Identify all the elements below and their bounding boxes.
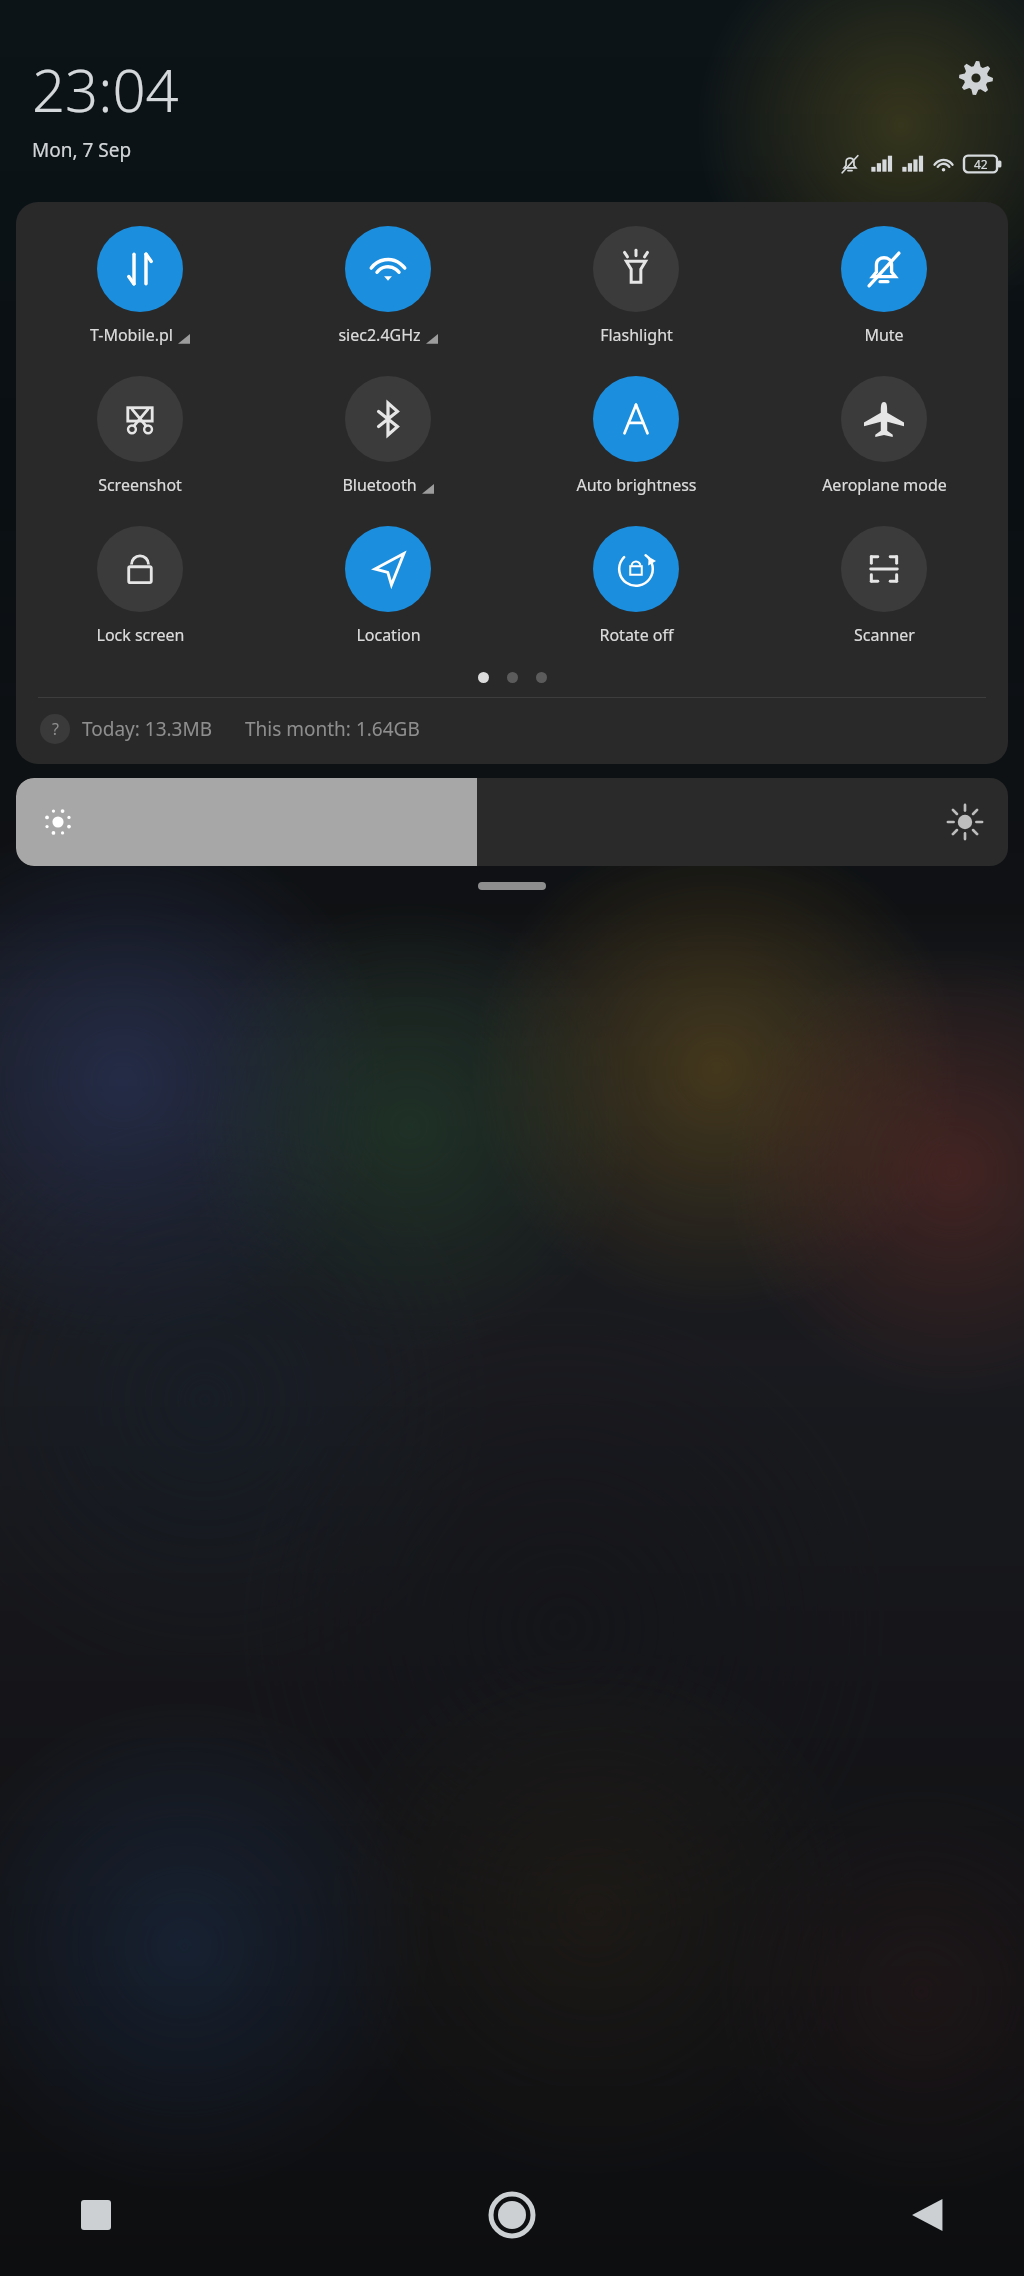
button[interactable]: Aeroplane mode [760,372,1008,500]
button[interactable]: Auto brightness [512,372,760,500]
button[interactable]: Scanner [760,522,1008,650]
staticText: Mute [864,324,904,346]
button[interactable]: Lock screen [16,522,264,650]
button[interactable]: Flashlight [512,222,760,350]
button[interactable]: Back [884,2171,972,2259]
staticText: T-Mobile.pl [90,324,173,346]
staticText: ? [52,718,59,740]
staticText: 42 [974,156,988,172]
staticText: siec2.4GHz [338,324,421,346]
button[interactable]: Rotate off [512,522,760,650]
staticText: Location [356,624,421,646]
staticText: This month: 1.64GB [245,716,420,742]
button[interactable]: Bluetooth [264,372,512,500]
button[interactable]: Home [468,2171,556,2259]
button[interactable]: ? [16,698,1008,764]
button[interactable]: Mute [760,222,1008,350]
staticText: Lock screen [96,624,185,646]
staticText: Mon, 7 Sep [32,137,132,163]
staticText: Today: 13.3MB [82,716,213,742]
staticText: Screenshot [98,474,182,496]
button[interactable]: Brightness [16,778,1008,866]
staticText: Auto brightness [576,474,697,496]
staticText: Rotate off [599,624,674,646]
staticText: Flashlight [600,324,673,346]
staticText: Scanner [854,624,915,646]
button[interactable]: Screenshot [16,372,264,500]
button[interactable]: Recents [52,2171,140,2259]
staticText: 23:04 [32,50,179,129]
button[interactable]: Settings [948,50,1004,106]
button[interactable]: Location [264,522,512,650]
button[interactable]: T-Mobile.pl [16,222,264,350]
button[interactable]: siec2.4GHz [264,222,512,350]
staticText: Aeroplane mode [822,474,947,496]
staticText: Bluetooth [342,474,417,496]
